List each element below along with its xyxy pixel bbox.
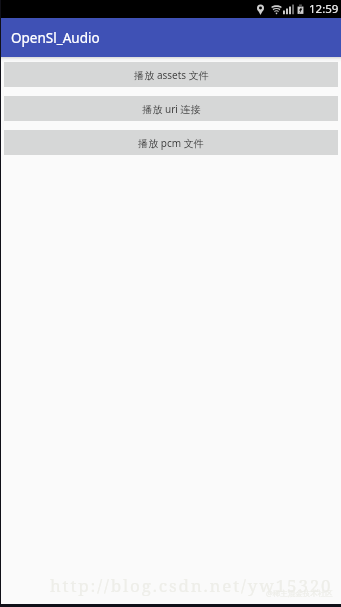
staticText: @稀主混金技术社区 <box>266 588 333 598</box>
button[interactable]: 播放 assets 文件 <box>4 62 338 87</box>
other: Location <box>257 4 264 15</box>
staticText: 12:59 <box>309 1 339 17</box>
staticText: 播放 assets 文件 <box>134 68 209 82</box>
other: Battery charging <box>297 4 304 15</box>
staticText: 播放 uri 连接 <box>142 102 201 116</box>
button[interactable]: 播放 pcm 文件 <box>4 130 338 155</box>
staticText: OpenSl_Audio <box>11 29 100 47</box>
staticText: 播放 pcm 文件 <box>138 136 204 150</box>
other: Wi-Fi <box>271 3 282 15</box>
button[interactable]: 播放 uri 连接 <box>4 96 338 121</box>
other: Mobile signal <box>283 4 294 15</box>
staticText: http://blog.csdn.net/yw15320 <box>50 574 333 597</box>
